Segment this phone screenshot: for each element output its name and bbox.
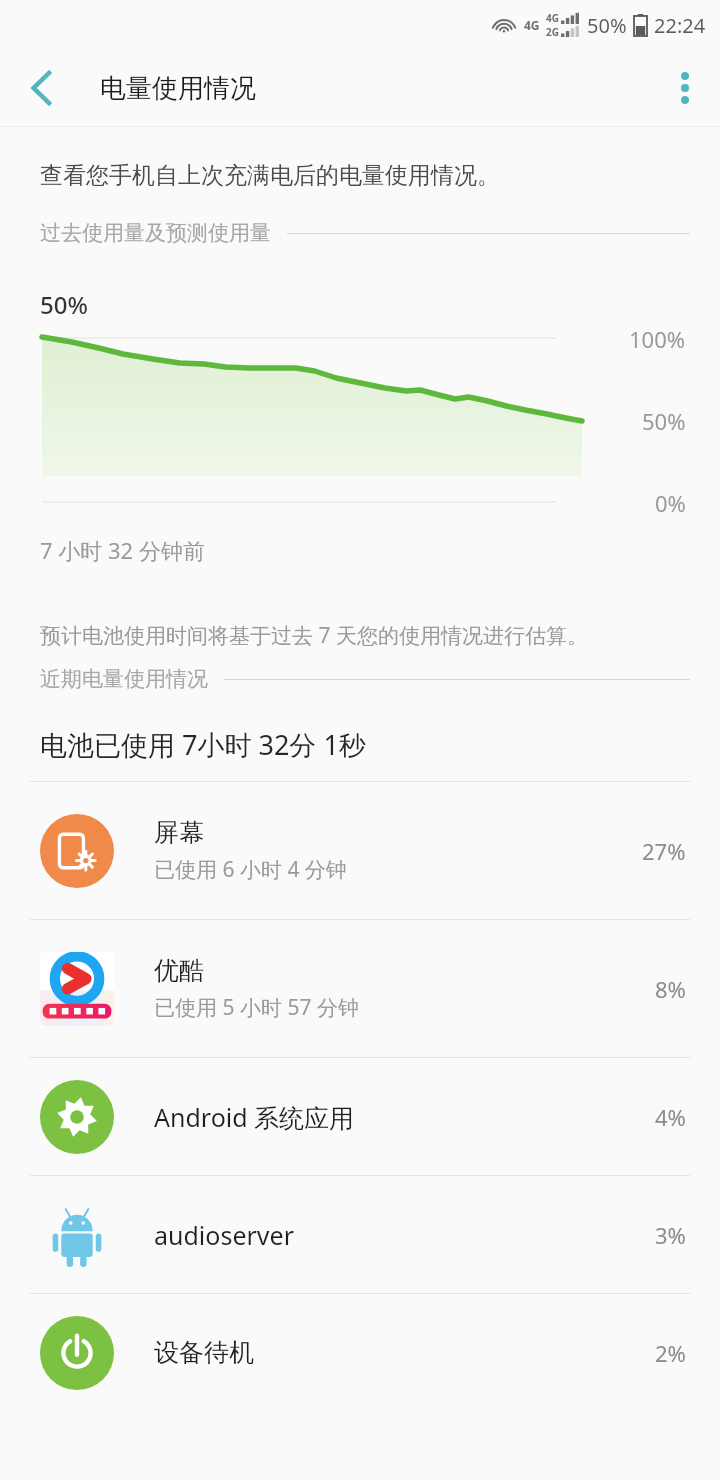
staticText: 50% [642,406,686,436]
staticText: 预计电池使用时间将基于过去 7 天您的使用情况进行估算。 [40,621,588,650]
staticText: 8% [655,974,686,1004]
staticText: 过去使用量及预测使用量 [40,220,271,246]
staticText: 4G [524,17,540,33]
staticText: 查看您手机自上次充满电后的电量使用情况。 [40,161,500,190]
staticText: 22:24 [654,12,706,39]
staticText: 2% [655,1338,686,1368]
staticText: 近期电量使用情况 [40,666,208,692]
button[interactable]: 设备待机 [0,1294,720,1411]
button[interactable]: Back [12,58,72,118]
staticText: Android 系统应用 [154,1100,355,1134]
staticText: 电量使用情况 [100,72,256,105]
staticText: 已使用 6 小时 4 分钟 [154,855,347,884]
button[interactable]: 优酷 [0,920,720,1057]
staticText: 50% [587,12,627,39]
staticText: 已使用 5 小时 57 分钟 [154,993,359,1022]
staticText: 2G [546,25,559,39]
staticText: 电池已使用 7小时 32分 1秒 [40,726,366,763]
button[interactable]: Android 系统应用 [0,1058,720,1175]
button[interactable]: audioserver [0,1176,720,1293]
staticText: 0% [655,488,686,518]
button[interactable]: 屏幕 [0,782,720,919]
staticText: 100% [629,324,686,354]
staticText: 7 小时 32 分钟前 [40,535,205,565]
staticText: 屏幕 [154,817,204,848]
button[interactable]: More options [658,57,712,119]
staticText: 3% [655,1220,686,1250]
staticText: 4G [546,11,559,25]
staticText: audioserver [154,1218,294,1252]
staticText: 4% [655,1102,686,1132]
staticText: 50% [40,288,88,321]
staticText: 27% [642,836,686,866]
staticText: 优酷 [154,955,204,986]
staticText: 设备待机 [154,1337,254,1368]
